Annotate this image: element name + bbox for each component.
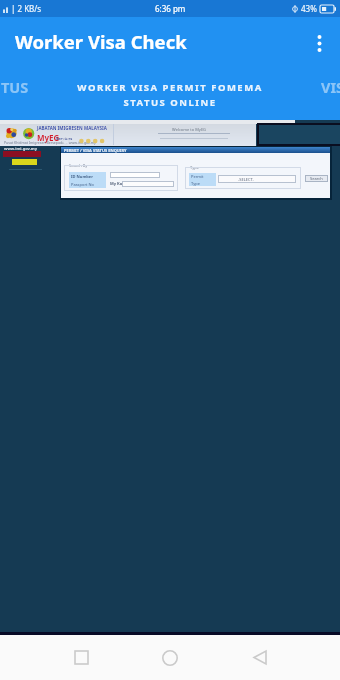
- staticText: Services: [56, 136, 73, 141]
- staticText: -SELECT-: [238, 177, 254, 182]
- staticText: Welcome to MyEG: [172, 127, 207, 132]
- staticText: Worker Visa Check: [15, 29, 187, 54]
- staticText: My Kad: [110, 181, 125, 186]
- staticText: Search: [310, 176, 323, 181]
- staticText: JABATAN IMIGRESEN MALAYSIA: [37, 125, 107, 131]
- staticText: Permit: [191, 174, 204, 179]
- staticText: Search By: [69, 163, 88, 168]
- staticText: 43%: [301, 3, 317, 14]
- button[interactable]: Recent apps: [60, 635, 102, 680]
- staticText: MyEG: [37, 132, 60, 143]
- staticText: Pusat Khidmat Imigresen Bersepadu . www.…: [4, 140, 96, 145]
- staticText: Type: [191, 181, 200, 186]
- staticText: Type: [190, 165, 199, 170]
- staticText: TUS: [1, 77, 29, 97]
- staticText: WORKER VISA PERMIT FOMEMA STATUS ONLINE: [77, 81, 263, 109]
- button[interactable]: More options: [304, 28, 334, 58]
- button[interactable]: Home: [149, 635, 191, 680]
- staticText: ID Number: [71, 174, 93, 179]
- staticText: | 2 KB/s: [11, 3, 42, 14]
- button[interactable]: Back: [239, 635, 281, 680]
- staticText: www.imi.gov.my: [4, 146, 38, 151]
- staticText: VIS: [321, 77, 340, 97]
- staticText: Passport No: [71, 182, 94, 187]
- staticText: PERMIT / VISA STATUS ENQUIRY: [64, 148, 127, 153]
- staticText: 6:36 pm: [155, 3, 186, 14]
- button[interactable]: Search: [305, 175, 328, 182]
